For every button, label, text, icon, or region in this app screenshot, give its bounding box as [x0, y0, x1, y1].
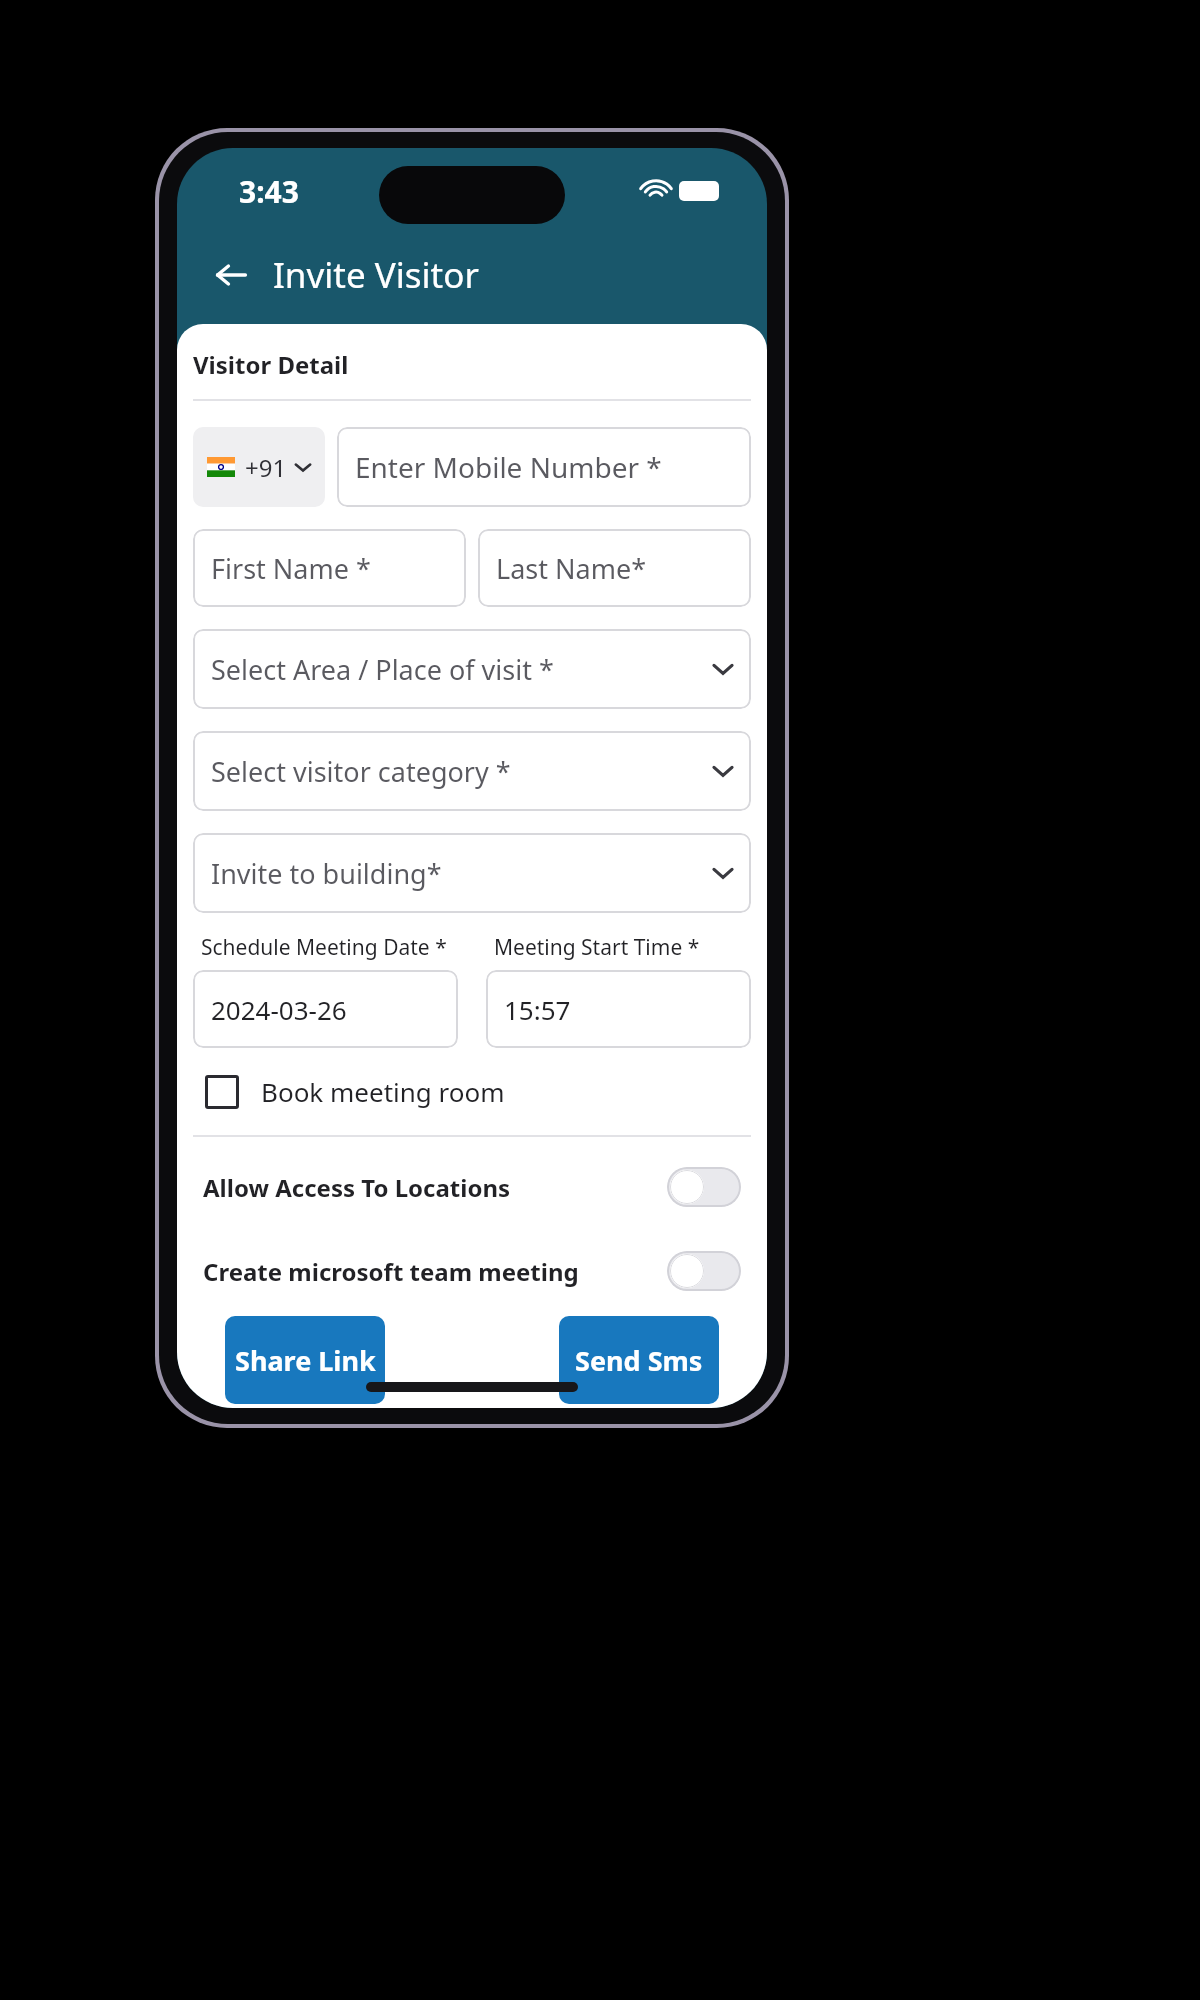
staticText: Allow Access To Locations — [203, 1171, 667, 1204]
button[interactable]: First Name * — [193, 529, 466, 607]
staticText: Invite Visitor — [273, 251, 479, 299]
button[interactable]: Invite to building* — [193, 833, 751, 913]
button[interactable]: Toggle — [667, 1251, 741, 1291]
staticText: Select Area / Place of visit * — [211, 651, 554, 688]
staticText: Invite to building* — [211, 855, 442, 892]
staticText: Share Link — [235, 1342, 376, 1379]
button[interactable]: Select visitor category * — [193, 731, 751, 811]
button[interactable]: Allow Access To Locations — [193, 1167, 751, 1207]
staticText: Last Name* — [496, 550, 647, 587]
button[interactable]: Toggle — [667, 1167, 741, 1207]
staticText: Select visitor category * — [211, 753, 511, 790]
button[interactable]: 15:57 — [486, 970, 751, 1048]
button[interactable]: Select Area / Place of visit * — [193, 629, 751, 709]
button[interactable]: Book meeting room — [193, 1074, 751, 1109]
button[interactable]: Share Link — [225, 1316, 385, 1404]
staticText: Create microsoft team meeting — [203, 1255, 667, 1288]
staticText: Visitor Detail — [193, 348, 349, 381]
button[interactable]: Last Name* — [478, 529, 751, 607]
staticText: First Name * — [211, 550, 371, 587]
button[interactable]: 2024-03-26 — [193, 970, 458, 1048]
staticText: Send Sms — [575, 1342, 703, 1379]
staticText: 15:57 — [504, 992, 571, 1027]
staticText: 3:43 — [239, 171, 299, 212]
button[interactable]: +91 — [193, 427, 325, 507]
button[interactable]: Back — [205, 249, 257, 301]
staticText: Enter Mobile Number * — [355, 448, 662, 486]
button[interactable]: Enter Mobile Number * — [337, 427, 751, 507]
button[interactable]: Create microsoft team meeting — [193, 1251, 751, 1291]
staticText: Schedule Meeting Date * — [201, 933, 447, 962]
button[interactable]: Send Sms — [559, 1316, 719, 1404]
staticText: Meeting Start Time * — [494, 933, 700, 962]
staticText: Book meeting room — [261, 1074, 505, 1109]
staticText: +91 — [245, 451, 287, 484]
staticText: 2024-03-26 — [211, 992, 347, 1027]
